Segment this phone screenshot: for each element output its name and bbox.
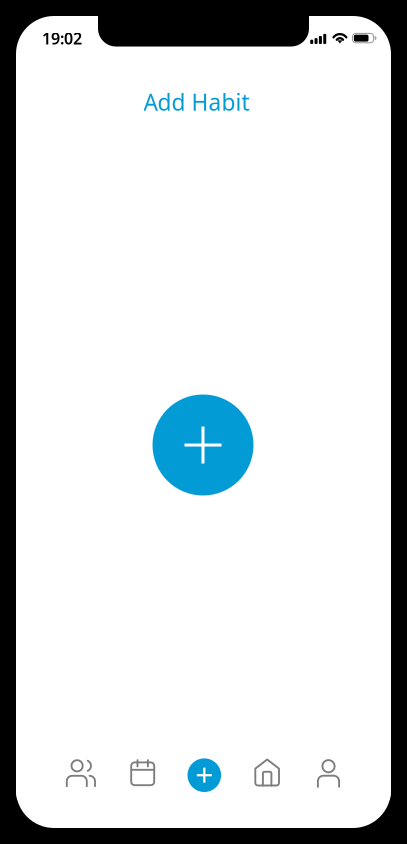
- button[interactable]: Add Habit: [152, 394, 253, 495]
- staticText: 19:02: [42, 28, 82, 49]
- button[interactable]: Calendar: [112, 744, 174, 800]
- button[interactable]: Add: [173, 744, 235, 800]
- button[interactable]: Home: [236, 744, 298, 800]
- staticText: Add Habit: [143, 87, 249, 117]
- button[interactable]: Profile: [297, 744, 359, 800]
- button[interactable]: Friends: [50, 744, 112, 800]
